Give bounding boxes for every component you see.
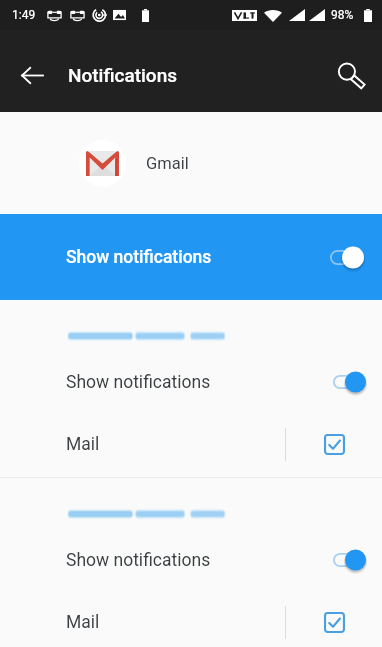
button[interactable]: Gmail <box>0 112 382 214</box>
button[interactable]: Back <box>6 47 58 103</box>
staticText: Notifications <box>68 64 177 86</box>
button[interactable]: Mail checkbox <box>286 591 382 647</box>
staticText: Show notifications <box>66 247 212 268</box>
button[interactable]: Mail checkbox <box>286 413 382 475</box>
button[interactable]: Mail <box>0 413 285 475</box>
staticText: Mail <box>66 434 100 455</box>
button[interactable]: Show notifications <box>0 536 382 584</box>
button[interactable]: Show notifications <box>0 358 382 406</box>
staticText: Show notifications <box>66 372 211 393</box>
button[interactable]: Mail <box>0 591 285 647</box>
staticText: 98% <box>331 8 354 22</box>
staticText: Mail <box>66 612 100 633</box>
button[interactable]: Show notifications <box>0 214 382 300</box>
staticText: Show notifications <box>66 550 211 571</box>
staticText: 1:49 <box>12 8 36 22</box>
button[interactable]: Search <box>323 47 375 103</box>
staticText: Gmail <box>146 154 189 173</box>
